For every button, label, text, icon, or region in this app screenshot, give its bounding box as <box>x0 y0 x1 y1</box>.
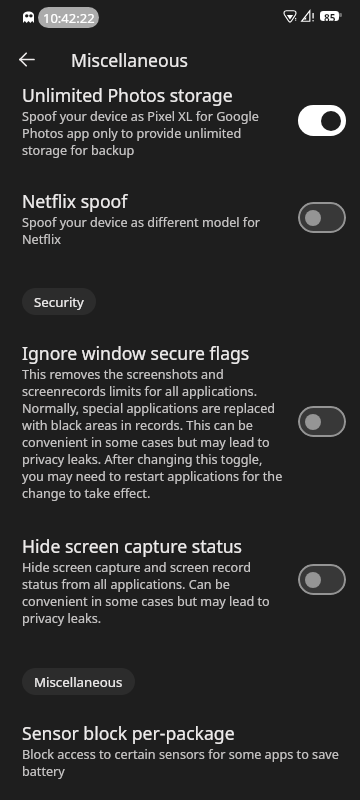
button[interactable]: Hide screen capture status <box>0 518 360 639</box>
staticText: Security <box>34 293 84 311</box>
staticText: Unlimited Photos storage <box>22 83 233 107</box>
button[interactable]: Unlimited Photos storage <box>0 67 360 171</box>
button[interactable]: Toggle <box>298 564 346 595</box>
button[interactable]: Sensor block per-package <box>0 705 360 792</box>
staticText: Sensor block per-package <box>22 721 235 745</box>
staticText: This removes the screenshots and screenr… <box>22 365 286 501</box>
staticText: Block access to certain sensors for some… <box>22 745 345 779</box>
staticText: Spoof your device as Pixel XL for Google… <box>22 107 286 158</box>
button[interactable]: Toggle <box>298 105 346 136</box>
staticText: Ignore window secure flags <box>22 341 250 365</box>
button[interactable]: Ignore window secure flags <box>0 325 360 515</box>
button[interactable]: Miscellaneous <box>22 668 135 695</box>
staticText: Spoof your device as different model for… <box>22 213 286 247</box>
staticText: Miscellaneous <box>71 48 188 72</box>
staticText: 10:42:22 <box>43 9 95 27</box>
staticText: Miscellaneous <box>34 673 123 691</box>
staticText: 85 <box>324 11 336 21</box>
button[interactable]: Back <box>6 39 46 79</box>
button[interactable]: Security <box>22 288 96 315</box>
staticText: Hide screen capture status <box>22 534 243 558</box>
button[interactable]: Netflix spoof <box>0 173 360 260</box>
staticText: Hide screen capture and screen record st… <box>22 558 286 626</box>
button[interactable]: Toggle <box>298 202 346 233</box>
button[interactable]: Toggle <box>298 406 346 437</box>
staticText: Netflix spoof <box>22 189 128 213</box>
